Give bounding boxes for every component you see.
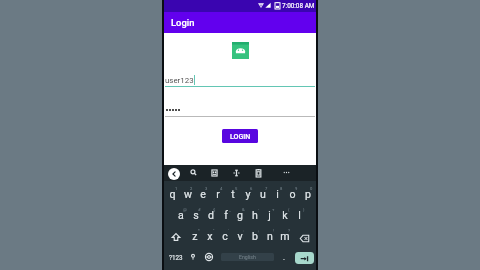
button[interactable]: English [221,253,274,261]
staticText: w [184,188,192,200]
button[interactable]: Clipboard [252,167,264,179]
staticText: user123 [165,76,194,85]
staticText: # [198,207,201,212]
button[interactable]: d [203,206,218,226]
staticText: g [237,209,243,221]
button[interactable]: Back [168,168,180,180]
staticText: ( [288,207,290,212]
staticText: f [224,209,228,221]
staticText: ' [228,228,229,233]
button[interactable]: r [210,185,225,205]
button[interactable]: j [262,206,277,226]
button[interactable]: t [225,185,240,205]
button[interactable]: i [270,185,285,205]
staticText: j [268,209,271,221]
staticText: 2 [190,186,193,191]
button[interactable]: x [202,227,217,247]
staticText: 1 [175,186,178,191]
button[interactable]: h [247,206,262,226]
staticText: 3 [205,186,208,191]
button[interactable]: l [292,206,307,226]
staticText: : [243,228,245,233]
staticText: ) [303,207,305,212]
button[interactable]: ?123 [167,248,185,266]
staticText: r [216,188,220,200]
button[interactable]: More options [280,167,292,179]
button[interactable]: v [232,227,247,247]
button[interactable]: o [285,185,300,205]
button[interactable]: z [187,227,202,247]
staticText: t [231,188,235,200]
staticText: s [193,209,199,221]
staticText: h [252,209,258,221]
staticText: u [260,188,266,200]
staticText: 7:00:08 AM [282,2,315,10]
staticText: LOGIN [230,132,251,140]
staticText: Login [171,17,195,28]
staticText: x [207,230,213,242]
staticText: " [213,228,215,233]
staticText: o [289,188,296,200]
button[interactable]: w [180,185,195,205]
button[interactable]: Backspace [297,230,312,246]
button[interactable]: q [165,185,180,205]
button[interactable]: e [195,185,210,205]
button[interactable]: p [300,185,315,205]
staticText: e [200,188,206,200]
staticText: d [208,209,214,221]
staticText: * [198,228,200,233]
staticText: 9 [295,186,298,191]
staticText: + [272,207,275,212]
staticText: c [222,230,228,242]
staticText: k [282,209,288,221]
button[interactable]: m [277,227,292,247]
staticText: & [242,207,245,212]
button[interactable]: y [240,185,255,205]
button[interactable]: Voice input [186,250,200,264]
staticText: English [239,254,256,260]
button[interactable]: Select text [230,167,242,179]
button[interactable]: Shift [168,229,183,245]
staticText: i [276,188,279,200]
button[interactable]: Search [187,167,199,179]
button[interactable]: s [188,206,203,226]
button[interactable]: u [255,185,270,205]
staticText: 7 [265,186,268,191]
staticText: b [252,230,258,242]
button[interactable]: Change language [202,250,216,264]
staticText: _ [229,207,231,212]
button[interactable]: k [277,206,292,226]
button[interactable]: g [232,206,247,226]
staticText: ! [273,228,275,233]
staticText: $ [213,207,216,212]
staticText: ; [258,228,259,233]
staticText: ?123 [169,254,183,261]
staticText: m [280,230,290,242]
staticText: ? [288,228,290,233]
staticText: l [298,209,301,221]
button[interactable]: a [173,206,188,226]
staticText: 5 [235,186,238,191]
button[interactable]: . [278,249,290,265]
staticText: . [283,253,285,262]
staticText: v [237,230,243,242]
staticText: - [258,207,260,212]
button[interactable]: n [262,227,277,247]
button[interactable]: f [218,206,233,226]
staticText: y [245,188,251,200]
staticText: p [305,188,311,200]
staticText: a [178,209,184,221]
button[interactable]: Stickers [208,167,220,179]
staticText: 6 [250,186,253,191]
staticText: @ [183,207,187,212]
staticText: 8 [280,186,283,191]
staticText: q [169,188,176,200]
button[interactable]: c [217,227,232,247]
staticText: n [267,230,273,242]
button[interactable]: LOGIN [222,129,258,143]
staticText: z [192,230,198,242]
button[interactable]: b [247,227,262,247]
staticText: 4 [220,186,223,191]
staticText: 0 [310,186,313,191]
button[interactable]: Enter [295,252,314,264]
